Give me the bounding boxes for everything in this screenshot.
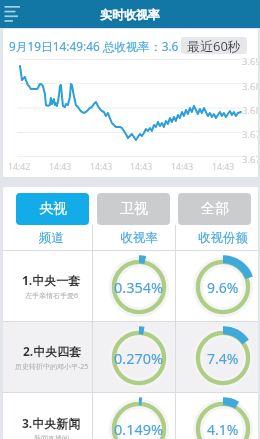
staticText: 3.67	[242, 153, 258, 166]
button[interactable]: 央视	[16, 193, 89, 225]
button[interactable]: 最近60秒	[181, 37, 247, 54]
staticText: 9.6%	[207, 278, 239, 297]
staticText: 3.68	[242, 80, 258, 93]
staticText: 14:43	[171, 161, 194, 173]
staticText: 收视份额	[198, 230, 248, 246]
button[interactable]: 全部	[178, 193, 251, 225]
staticText: 收视率	[120, 230, 158, 246]
staticText: 央视	[39, 200, 67, 218]
staticText: 14:43	[130, 161, 153, 173]
staticText: 3.68	[242, 104, 258, 117]
staticText: 频道	[39, 230, 64, 246]
staticText: 0.270%	[114, 348, 164, 368]
staticText: 7.4%	[207, 349, 239, 368]
staticText: 14:42	[8, 161, 31, 173]
staticText: 4.1%	[207, 420, 239, 439]
staticText: 3.69	[242, 55, 258, 68]
staticText: 1.中央一套	[22, 272, 81, 288]
staticText: 9月19日14:49:46 总收视率：3.6	[9, 38, 179, 54]
button[interactable]: 1.中央一套	[3, 251, 258, 322]
staticText: 左手亲情右手爱6	[25, 291, 79, 301]
button[interactable]: Menu	[0, 1, 26, 27]
staticText: 卫视	[120, 200, 148, 218]
staticText: 2.中央四套	[23, 343, 82, 359]
button[interactable]: 卫视	[97, 193, 170, 225]
staticText: 14:43	[49, 161, 72, 173]
button[interactable]: 3.中央新闻	[3, 393, 258, 439]
staticText: 全部	[201, 200, 229, 218]
staticText: 最近60秒	[187, 37, 241, 54]
staticText: 0.149%	[114, 419, 164, 439]
staticText: 新闻直播间	[34, 434, 69, 439]
staticText: 3.67	[242, 128, 258, 141]
button[interactable]: 2.中央四套	[3, 322, 258, 393]
staticText: 历史转折中的邓小平-25	[15, 362, 89, 372]
staticText: 14:43	[90, 161, 113, 173]
staticText: 14:43	[212, 161, 235, 173]
staticText: 0.354%	[114, 277, 164, 297]
staticText: 3.中央新闻	[22, 415, 81, 431]
staticText: 实时收视率	[100, 7, 160, 22]
